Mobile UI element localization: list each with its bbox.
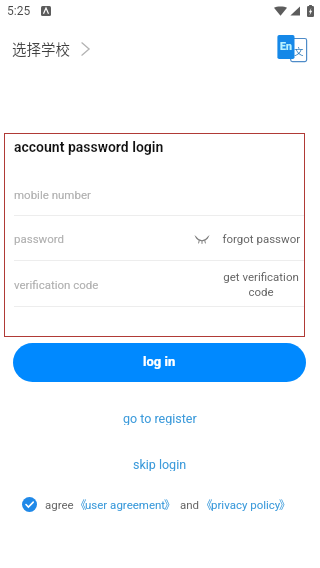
button[interactable]: get verification code	[222, 261, 300, 307]
staticText: password	[14, 232, 65, 245]
staticText: 《	[201, 496, 213, 513]
button[interactable]: 选择学校	[0, 32, 100, 65]
staticText: get verification code	[222, 270, 300, 299]
button[interactable]: Switch language	[277, 35, 307, 63]
button[interactable]: forgot password	[222, 216, 300, 261]
button[interactable]: 《	[201, 496, 295, 513]
staticText: user agreement	[85, 498, 166, 511]
staticText: agree	[45, 498, 74, 511]
staticText: forgot password	[222, 232, 300, 245]
staticText: 《	[75, 496, 87, 513]
staticText: privacy policy	[211, 498, 281, 511]
staticText: mobile number	[14, 188, 91, 201]
staticText: En	[280, 40, 292, 52]
staticText: skip login	[133, 457, 187, 471]
button[interactable]: go to register	[109, 408, 211, 428]
button[interactable]: Show password	[195, 235, 209, 243]
button[interactable]: skip login	[119, 454, 201, 474]
staticText: 》	[279, 496, 291, 513]
staticText: and	[180, 498, 200, 511]
staticText: 选择学校	[12, 38, 70, 59]
button[interactable]: Agree to terms	[22, 497, 37, 512]
staticText: account password login	[14, 139, 164, 155]
button[interactable]: log in	[13, 343, 306, 382]
staticText: verification code	[14, 278, 99, 291]
staticText: log in	[143, 354, 176, 369]
staticText: 》	[164, 496, 176, 513]
staticText: go to register	[123, 411, 197, 425]
staticText: 文	[294, 44, 304, 58]
button[interactable]: 《	[75, 496, 180, 513]
staticText: 5:25	[7, 4, 31, 18]
